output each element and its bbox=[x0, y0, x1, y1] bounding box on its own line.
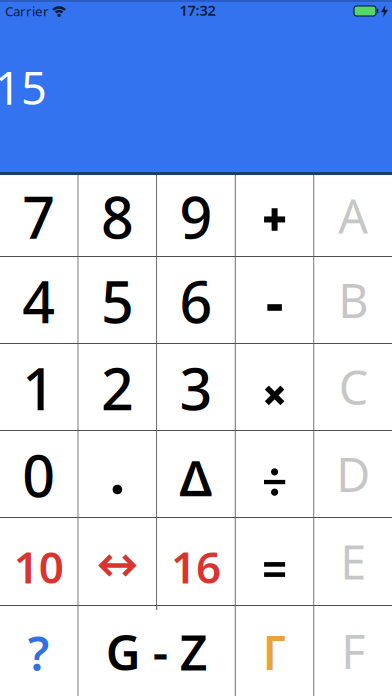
button[interactable]: ? bbox=[0, 606, 78, 696]
staticText: 10 bbox=[14, 537, 64, 596]
staticText: Carrier bbox=[5, 2, 49, 20]
button[interactable]: G - Z bbox=[79, 606, 235, 696]
button[interactable] bbox=[79, 431, 156, 517]
button[interactable]: Γ bbox=[236, 606, 313, 696]
button[interactable]: B bbox=[314, 257, 392, 343]
staticText: C bbox=[339, 356, 368, 418]
button[interactable]: F bbox=[314, 606, 392, 696]
staticText: 0 bbox=[22, 437, 55, 513]
staticText: Δ bbox=[179, 444, 212, 510]
staticText: E bbox=[340, 530, 366, 592]
button[interactable]: 1 bbox=[0, 344, 78, 430]
staticText: 17:32 bbox=[179, 0, 215, 20]
staticText: 2 bbox=[101, 350, 134, 426]
button[interactable]: 0 bbox=[0, 431, 78, 517]
button[interactable]: 6 bbox=[157, 257, 235, 343]
staticText: F bbox=[341, 620, 365, 682]
button[interactable]: A bbox=[314, 175, 392, 256]
staticText: 3 bbox=[179, 350, 212, 426]
button[interactable]: Δ bbox=[157, 431, 235, 517]
button[interactable] bbox=[236, 175, 313, 256]
staticText: 1 bbox=[22, 350, 55, 426]
button[interactable]: 9 bbox=[157, 175, 235, 256]
staticText: 9 bbox=[179, 178, 212, 254]
button[interactable]: E bbox=[314, 518, 392, 605]
button[interactable] bbox=[236, 257, 313, 343]
staticText: 16 bbox=[171, 537, 221, 596]
button[interactable]: 4 bbox=[0, 257, 78, 343]
staticText: 5 bbox=[101, 263, 134, 339]
button[interactable]: 10 bbox=[0, 518, 78, 605]
button[interactable] bbox=[79, 518, 156, 605]
button[interactable]: 5 bbox=[79, 257, 156, 343]
staticText: 4 bbox=[22, 263, 55, 339]
staticText: ? bbox=[28, 622, 50, 684]
staticText: B bbox=[338, 269, 368, 331]
button[interactable] bbox=[236, 518, 313, 605]
button[interactable]: 16 bbox=[157, 518, 235, 605]
staticText: Γ bbox=[263, 621, 287, 683]
staticText: 6 bbox=[179, 263, 212, 339]
button[interactable]: 2 bbox=[79, 344, 156, 430]
button[interactable]: D bbox=[314, 431, 392, 517]
button[interactable]: 8 bbox=[79, 175, 156, 256]
staticText: 15 bbox=[0, 57, 47, 117]
staticText: 7 bbox=[22, 178, 55, 254]
staticText: 8 bbox=[101, 178, 134, 254]
staticText: A bbox=[338, 184, 368, 246]
staticText: G - Z bbox=[106, 620, 208, 684]
button[interactable]: C bbox=[314, 344, 392, 430]
staticText: D bbox=[336, 443, 370, 505]
button[interactable]: 3 bbox=[157, 344, 235, 430]
button[interactable] bbox=[236, 431, 313, 517]
button[interactable] bbox=[236, 344, 313, 430]
button[interactable]: 7 bbox=[0, 175, 78, 256]
